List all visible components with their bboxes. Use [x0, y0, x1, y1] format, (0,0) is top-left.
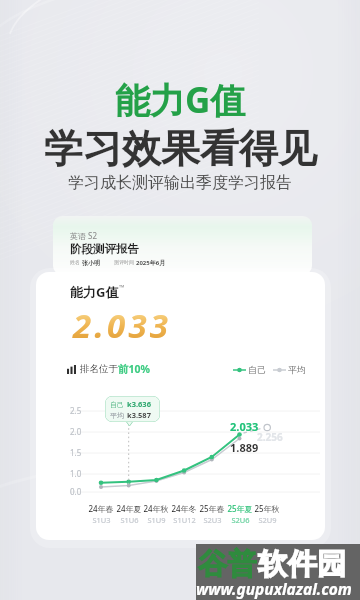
staticText: 25年春	[199, 503, 225, 514]
staticText: 软件园	[258, 546, 347, 583]
staticText: 谷普	[198, 546, 258, 583]
button[interactable]: 自己	[105, 396, 160, 422]
staticText: S1U9	[147, 515, 166, 525]
staticText: 自己	[248, 364, 266, 375]
staticText: 2.256	[257, 430, 283, 444]
staticText: ™	[119, 283, 125, 293]
staticText: 1.889	[230, 440, 259, 455]
staticText: 1.0	[70, 468, 82, 479]
staticText: 0.0	[70, 486, 82, 497]
staticText: 24年夏	[116, 503, 142, 514]
button[interactable]: Watermark gupuxlazal.com	[196, 544, 360, 600]
staticText: 能力G值	[115, 76, 246, 124]
staticText: S2U9	[258, 515, 277, 525]
button[interactable]: 24年春	[86, 503, 116, 525]
staticText: S2U6	[231, 515, 250, 525]
staticText: k3.587	[127, 410, 151, 420]
button[interactable]: 24年冬	[169, 503, 199, 525]
staticText: 2.5	[70, 405, 82, 416]
staticText: 1.5	[70, 447, 82, 458]
staticText: k3.636	[127, 399, 151, 409]
staticText: 前10%	[118, 362, 150, 376]
staticText: 自己	[110, 400, 124, 409]
staticText: S1U3	[92, 515, 111, 525]
staticText: 阶段测评报告	[70, 242, 139, 256]
staticText: S1U6	[120, 515, 139, 525]
staticText: S1U12	[173, 515, 196, 525]
staticText: 24年冬	[171, 503, 197, 514]
staticText: www.gupuxlazal.com	[196, 578, 352, 599]
staticText: 平均	[288, 364, 306, 375]
button[interactable]: 25年夏	[225, 503, 255, 525]
button[interactable]: 25年秋	[252, 503, 282, 525]
staticText: 测评时间	[114, 259, 134, 265]
staticText: 2025年6月	[136, 259, 166, 267]
staticText: 能力G值	[70, 283, 119, 301]
button[interactable]: 24年秋	[141, 503, 171, 525]
staticText: 平均	[110, 411, 124, 420]
staticText: 24年春	[88, 503, 114, 514]
staticText: 25年秋	[254, 503, 280, 514]
staticText: 排名位于	[80, 363, 118, 375]
button[interactable]: 能力G值	[36, 272, 325, 540]
staticText: 25年夏	[227, 503, 253, 514]
staticText: S2U3	[203, 515, 222, 525]
staticText: 2.033	[230, 419, 259, 434]
staticText: 姓名	[70, 259, 80, 265]
staticText: 英语 S2	[70, 230, 98, 241]
staticText: 学习成长测评输出季度学习报告	[68, 173, 292, 193]
staticText: 2.0	[70, 426, 82, 437]
staticText: 学习效果看得见	[44, 124, 317, 173]
staticText: 张小明	[82, 259, 100, 267]
staticText: 2.033	[73, 303, 172, 348]
button[interactable]: 英语 S2	[53, 216, 312, 275]
button[interactable]: 25年春	[197, 503, 227, 525]
staticText: 24年秋	[143, 503, 169, 514]
button[interactable]: 24年夏	[114, 503, 144, 525]
